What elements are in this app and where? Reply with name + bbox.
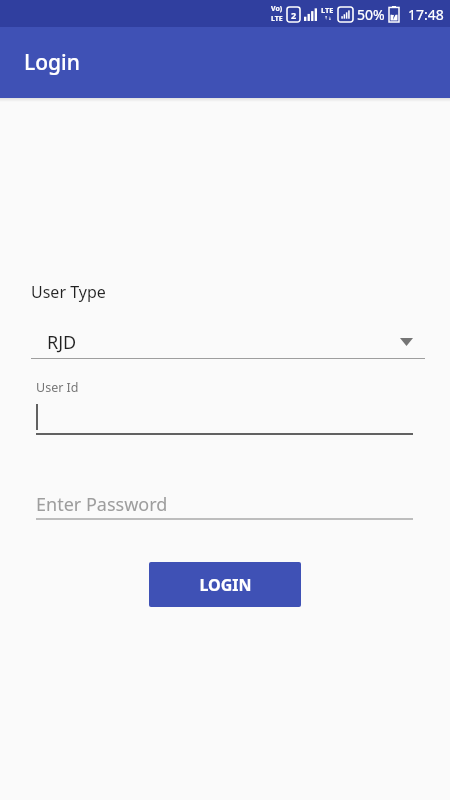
button[interactable]: User Id <box>36 379 413 435</box>
staticText: Login <box>24 48 80 77</box>
staticText: 2 <box>291 9 297 21</box>
staticText: LTE <box>271 14 283 24</box>
staticText: Enter Password <box>36 492 168 517</box>
button[interactable]: RJD <box>31 325 425 359</box>
staticText: LOGIN <box>199 574 252 596</box>
staticText: RJD <box>47 330 77 355</box>
button[interactable]: Login <box>149 562 301 607</box>
staticText: 50% <box>357 5 385 24</box>
staticText: 17:48 <box>408 5 444 24</box>
staticText: User Type <box>31 281 106 303</box>
staticText: LTE <box>321 5 334 15</box>
staticText: User Id <box>36 379 79 396</box>
button[interactable]: Enter Password <box>36 490 413 520</box>
staticText: Vo) <box>271 4 283 14</box>
